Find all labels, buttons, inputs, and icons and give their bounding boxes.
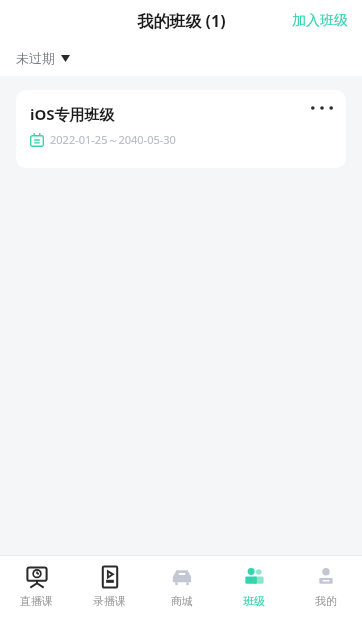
staticText: 直播课 [20,594,53,608]
staticText: 加入班级 [292,12,348,30]
staticText: 我的 [315,594,337,608]
button[interactable]: 未过期 [14,46,72,70]
button[interactable]: 直播课 [0,555,73,628]
staticText: 商城 [171,594,193,608]
staticText: 我的班级 (1) [137,10,226,32]
button[interactable]: iOS专用班级 [16,90,346,168]
staticText: 2022-01-25～2040-05-30 [50,132,176,147]
button[interactable]: More options [298,90,346,126]
staticText: iOS专用班级 [30,104,115,124]
button[interactable]: 我的 [290,555,362,628]
button[interactable]: 商城 [146,555,218,628]
staticText: 录播课 [93,594,126,608]
button[interactable]: 班级 [218,555,290,628]
button[interactable]: 加入班级 [278,4,362,38]
staticText: 未过期 [16,50,55,66]
button[interactable]: 录播课 [73,555,146,628]
staticText: 班级 [243,594,265,608]
